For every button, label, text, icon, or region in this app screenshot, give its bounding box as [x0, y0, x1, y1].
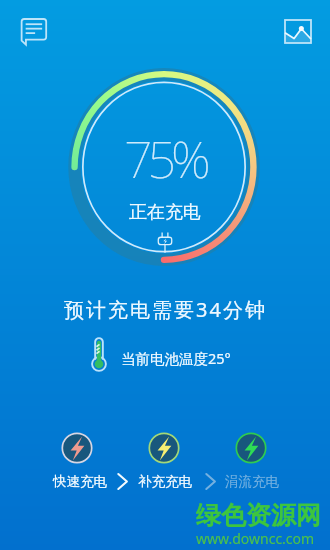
button[interactable]: 快速充电	[43, 431, 117, 491]
button[interactable]: 涓流充电	[215, 431, 289, 491]
staticText: 涓流充电	[225, 473, 279, 490]
staticText: 快速充电	[53, 473, 107, 490]
button[interactable]: 补充充电	[128, 431, 202, 491]
staticText: 正在充电	[129, 201, 201, 224]
button[interactable]: Messages	[14, 12, 52, 50]
staticText: 补充充电	[138, 473, 192, 490]
staticText: 预计充电需要34分钟	[64, 296, 267, 323]
staticText: 75%	[124, 125, 206, 193]
button[interactable]: Wallpaper	[279, 12, 317, 50]
staticText: 当前电池温度25°	[121, 348, 231, 368]
staticText: www.downcc.com	[196, 529, 315, 548]
staticText: 绿色资源网	[196, 500, 321, 531]
